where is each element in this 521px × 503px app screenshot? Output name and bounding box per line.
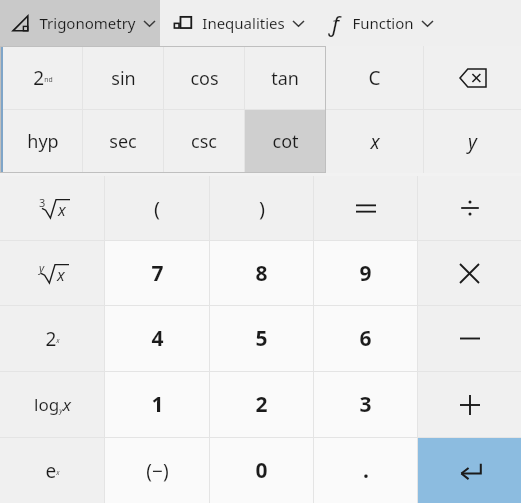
button[interactable]: csc [164,110,244,172]
button[interactable]: Nth root [0,241,104,305]
button[interactable]: Subtract [418,306,521,371]
button[interactable]: tan [245,47,325,109]
staticText: 3 [39,195,46,210]
button[interactable]: hyp [3,110,82,172]
button[interactable]: Trigonometry [0,0,160,46]
staticText: 7 [151,259,164,288]
staticText: Inequalities [202,13,285,33]
button[interactable]: Divide [418,176,521,240]
staticText: Function [352,13,414,33]
button[interactable]: ƒ [318,0,445,46]
button[interactable]: cot [245,110,325,172]
staticText: 2 [255,390,268,419]
button[interactable]: Cube root [0,176,104,240]
button[interactable]: Inequalities [160,0,318,46]
staticText: ) [259,195,265,222]
staticText: 0 [255,456,268,485]
staticText: . [363,456,369,485]
staticText: C [368,65,381,91]
button[interactable]: sec [83,110,163,172]
button[interactable]: logyx [0,372,104,437]
staticText: 4 [151,324,164,353]
staticText: hyp [27,129,59,154]
button[interactable]: sin [83,47,163,109]
staticText: 6 [359,324,372,353]
button[interactable]: x [326,110,423,173]
staticText: 8 [255,259,268,288]
staticText: x [57,264,65,286]
button[interactable]: 2 [210,372,313,437]
button[interactable]: ex [0,438,104,503]
button[interactable]: 0 [210,438,313,503]
staticText: cos [190,66,219,91]
staticText: (−) [146,458,169,484]
button[interactable]: 8 [210,241,313,305]
button[interactable]: . [314,438,417,503]
button[interactable]: 4 [105,306,209,371]
staticText: Trigonometry [39,13,136,33]
staticText: cot [272,129,299,154]
button[interactable]: 7 [105,241,209,305]
staticText: sin [111,66,136,91]
button[interactable]: 2x [0,306,104,371]
staticText: 2nd [33,65,53,91]
button[interactable]: 2nd [3,47,82,109]
button[interactable]: 5 [210,306,313,371]
staticText: csc [191,129,217,154]
button[interactable]: Enter [418,438,521,503]
button[interactable]: ) [210,176,313,240]
button[interactable]: 6 [314,306,417,371]
staticText: 3 [359,390,372,419]
staticText: 1 [151,390,164,419]
button[interactable]: ( [105,176,209,240]
button[interactable]: y [424,110,521,173]
staticText: 2x [45,326,60,352]
staticText: y [468,129,477,155]
staticText: ex [45,458,60,484]
button[interactable]: Multiply [418,241,521,305]
staticText: 5 [255,324,268,353]
staticText: y [39,260,45,275]
staticText: x [370,129,380,155]
button[interactable]: cos [164,47,244,109]
button[interactable]: C [326,46,423,109]
button[interactable]: (−) [105,438,209,503]
staticText: ƒ [330,8,340,38]
button[interactable]: 1 [105,372,209,437]
button[interactable]: 9 [314,241,417,305]
staticText: 9 [359,259,372,288]
button[interactable]: Add [418,372,521,437]
button[interactable]: Backspace [424,46,521,109]
staticText: x [58,199,66,221]
staticText: sec [109,129,137,154]
staticText: ( [154,195,160,222]
button[interactable]: Equals [314,176,417,240]
staticText: tan [271,66,299,91]
button[interactable]: 3 [314,372,417,437]
staticText: logyx [34,393,71,416]
